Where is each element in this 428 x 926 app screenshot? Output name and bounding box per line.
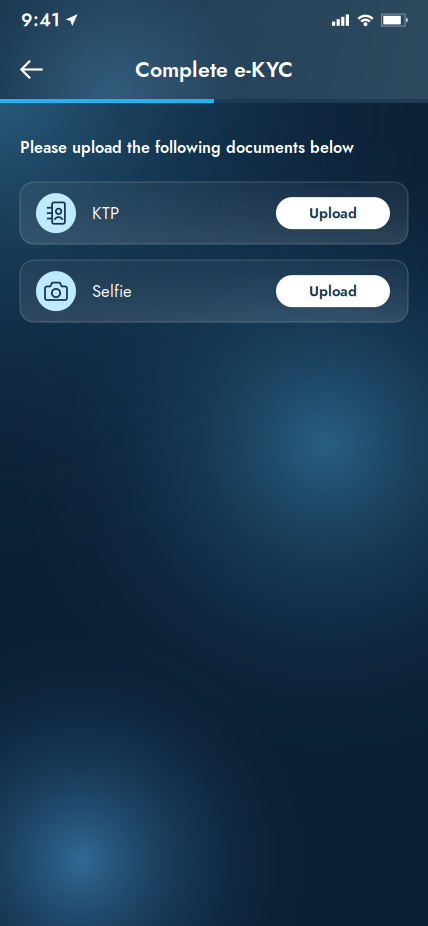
staticText: KTP: [92, 201, 119, 225]
button[interactable]: Back: [10, 47, 54, 91]
staticText: Upload: [309, 202, 357, 224]
button[interactable]: KTP: [20, 182, 408, 244]
staticText: Selfie: [92, 279, 132, 303]
staticText: Upload: [309, 280, 357, 302]
staticText: Complete e-KYC: [135, 54, 293, 85]
staticText: 9:41: [21, 7, 60, 33]
staticText: Please upload the following documents be…: [20, 136, 354, 159]
button[interactable]: Selfie: [20, 260, 408, 322]
